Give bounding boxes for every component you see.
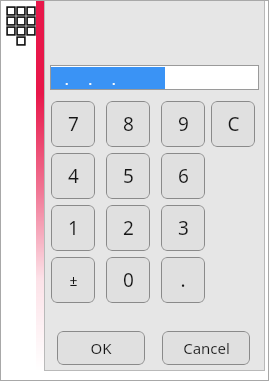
staticText: OK (90, 338, 112, 358)
staticText: 4 (68, 163, 79, 189)
button[interactable]: 9 (161, 101, 205, 147)
staticText: 0 (123, 267, 134, 293)
staticText: 7 (68, 111, 79, 137)
staticText: 5 (123, 163, 134, 189)
staticText: 8 (123, 111, 134, 137)
staticText: ± (69, 271, 78, 290)
button[interactable]: 2 (106, 205, 150, 251)
staticText: . (180, 267, 186, 293)
button[interactable]: . (161, 257, 205, 303)
staticText: Cancel (183, 338, 230, 358)
staticText: 3 (178, 215, 189, 241)
button[interactable]: 8 (106, 101, 150, 147)
button[interactable]: Keypad (4, 4, 38, 42)
button[interactable]: . . . (50, 65, 259, 90)
button[interactable]: 6 (161, 153, 205, 199)
button[interactable]: 4 (51, 153, 95, 199)
button[interactable]: OK (57, 331, 145, 365)
staticText: C (227, 111, 240, 137)
button[interactable]: 3 (161, 205, 205, 251)
staticText: 2 (123, 215, 134, 241)
button[interactable]: 5 (106, 153, 150, 199)
button[interactable]: 1 (51, 205, 95, 251)
button[interactable]: C (211, 101, 255, 147)
staticText: 6 (178, 163, 189, 189)
staticText: 9 (178, 111, 189, 137)
button[interactable]: ± (51, 257, 95, 303)
staticText: 1 (68, 215, 79, 241)
button[interactable]: 7 (51, 101, 95, 147)
button[interactable]: 0 (106, 257, 150, 303)
button[interactable]: Cancel (162, 331, 250, 365)
staticText: . . . (57, 69, 116, 89)
